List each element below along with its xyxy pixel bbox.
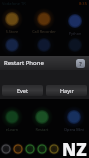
button[interactable]: Opera Mini (63, 106, 85, 128)
staticText: Opera Mini (60, 127, 88, 132)
staticText: Hayır (60, 87, 74, 94)
staticText: Restart Phone (4, 59, 44, 67)
button[interactable]: Camera (12, 143, 24, 155)
staticText: S.Store (0, 29, 26, 34)
button[interactable]: Hayır (46, 85, 87, 96)
button[interactable]: App (33, 34, 55, 56)
button[interactable]: Back (0, 143, 12, 155)
staticText: Evet (17, 87, 28, 94)
staticText: eLearn (0, 127, 26, 132)
staticText: Vodafone TR (2, 1, 26, 6)
button[interactable]: S.Store (1, 8, 23, 30)
button[interactable]: Help (76, 59, 85, 68)
staticText: Call Recorder (30, 29, 58, 34)
button[interactable]: Python (65, 11, 85, 31)
staticText: NZ (62, 138, 87, 158)
staticText: 8:35 (79, 1, 87, 6)
button[interactable]: Browser (48, 143, 60, 155)
button[interactable]: App (65, 35, 85, 55)
staticText: ? (79, 60, 82, 68)
button[interactable]: Phone (36, 143, 48, 155)
button[interactable]: eLearn (1, 106, 23, 128)
button[interactable]: Evet (2, 85, 43, 96)
staticText: Restart (28, 127, 56, 132)
button[interactable]: Call Recorder (33, 8, 55, 30)
staticText: Python (61, 31, 89, 36)
button[interactable]: Messages (24, 143, 36, 155)
button[interactable]: App (1, 34, 23, 56)
button[interactable]: Restart (31, 106, 53, 128)
